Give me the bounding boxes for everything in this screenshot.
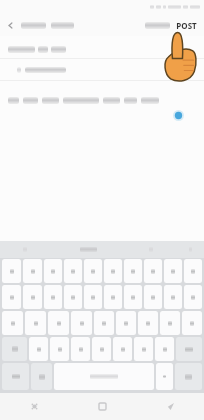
button[interactable] bbox=[48, 311, 69, 335]
button[interactable] bbox=[144, 259, 162, 283]
button[interactable]: Home bbox=[68, 393, 136, 420]
staticText: POST bbox=[176, 20, 197, 31]
button[interactable] bbox=[25, 311, 46, 335]
button[interactable] bbox=[94, 311, 114, 335]
button[interactable] bbox=[2, 285, 21, 309]
button[interactable] bbox=[50, 241, 126, 258]
button[interactable] bbox=[23, 285, 42, 309]
button[interactable]: POST bbox=[173, 16, 204, 35]
button[interactable] bbox=[71, 311, 92, 335]
button[interactable] bbox=[138, 311, 158, 335]
button[interactable] bbox=[155, 337, 174, 361]
button[interactable] bbox=[104, 259, 122, 283]
button[interactable]: Backspace bbox=[176, 337, 202, 361]
button[interactable] bbox=[71, 337, 90, 361]
button[interactable] bbox=[0, 93, 204, 107]
button[interactable] bbox=[164, 259, 182, 283]
button[interactable] bbox=[92, 337, 111, 361]
button[interactable] bbox=[104, 285, 122, 309]
button[interactable]: Recents bbox=[0, 393, 68, 420]
button[interactable] bbox=[64, 285, 82, 309]
button[interactable] bbox=[113, 337, 132, 361]
button[interactable] bbox=[134, 337, 153, 361]
button[interactable] bbox=[124, 285, 142, 309]
button[interactable] bbox=[84, 285, 102, 309]
button[interactable] bbox=[23, 259, 42, 283]
button[interactable]: Symbols bbox=[2, 363, 29, 390]
button[interactable] bbox=[0, 40, 204, 58]
button[interactable] bbox=[21, 22, 74, 29]
button[interactable]: Back bbox=[0, 14, 20, 36]
button[interactable] bbox=[144, 285, 162, 309]
button[interactable] bbox=[50, 337, 69, 361]
button[interactable] bbox=[44, 259, 62, 283]
button[interactable]: Emoji bbox=[31, 363, 52, 390]
button[interactable] bbox=[0, 59, 204, 80]
button[interactable] bbox=[2, 311, 23, 335]
button[interactable]: Period bbox=[156, 363, 173, 390]
button[interactable] bbox=[44, 285, 62, 309]
button[interactable] bbox=[164, 285, 182, 309]
button[interactable] bbox=[29, 337, 48, 361]
button[interactable] bbox=[2, 259, 21, 283]
button[interactable] bbox=[142, 18, 173, 33]
button[interactable] bbox=[160, 311, 180, 335]
button[interactable] bbox=[184, 259, 202, 283]
button[interactable] bbox=[182, 311, 202, 335]
button[interactable]: Enter bbox=[175, 363, 202, 390]
button[interactable] bbox=[84, 259, 102, 283]
button[interactable]: Back bbox=[136, 393, 204, 420]
button[interactable] bbox=[184, 285, 202, 309]
button[interactable] bbox=[64, 259, 82, 283]
button[interactable] bbox=[116, 311, 136, 335]
button[interactable]: Space bbox=[54, 363, 154, 390]
button[interactable] bbox=[124, 259, 142, 283]
button[interactable]: Shift bbox=[2, 337, 27, 361]
